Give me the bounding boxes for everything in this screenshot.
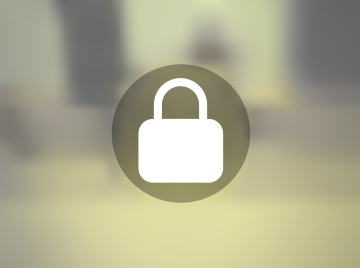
button[interactable]: Unlock [112,64,250,203]
